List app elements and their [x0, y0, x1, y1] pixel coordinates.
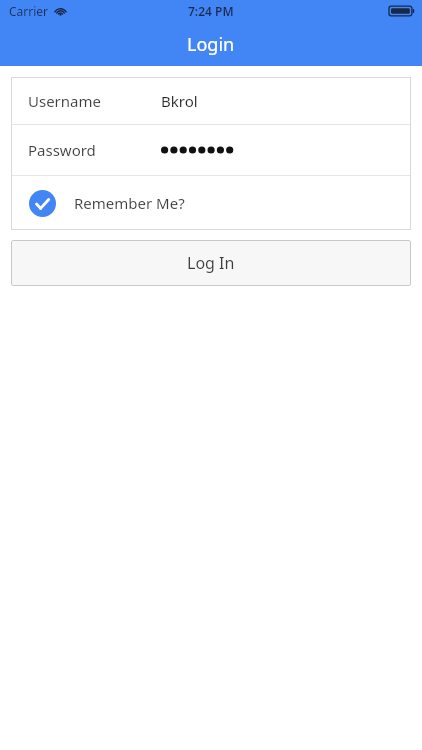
staticText: Login	[187, 32, 235, 57]
button[interactable]: Password	[11, 125, 411, 175]
button[interactable]: Remember Me checkbox, checked	[11, 176, 411, 230]
staticText: Carrier	[9, 3, 49, 19]
staticText: Remember Me?	[74, 193, 185, 213]
button[interactable]: Log In	[11, 240, 411, 286]
staticText: Bkrol	[161, 91, 198, 111]
staticText: Username	[28, 91, 101, 111]
other: Remember Me checkbox, checked	[29, 190, 56, 217]
staticText: Log In	[187, 252, 235, 274]
staticText: Password	[28, 140, 96, 160]
staticText: 7:24 PM	[188, 3, 234, 19]
button[interactable]: Username	[11, 77, 411, 124]
